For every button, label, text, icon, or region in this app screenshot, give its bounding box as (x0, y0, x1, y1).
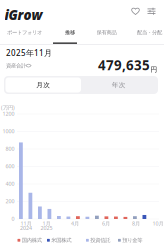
staticText: 6月 (102, 220, 110, 227)
staticText: 預り金等 (122, 237, 142, 244)
staticText: 資産合計 (6, 62, 26, 69)
button[interactable]: 年次 (81, 77, 156, 92)
staticText: 400 (5, 180, 14, 187)
staticText: 600 (5, 163, 14, 170)
staticText: 1月 (42, 220, 50, 227)
staticText: (万円) (1, 104, 15, 111)
staticText: 800 (5, 145, 14, 152)
button[interactable]: Hide balance (25, 63, 31, 68)
staticText: 200 (5, 198, 14, 205)
staticText: 479,635 (98, 56, 150, 74)
staticText: 2025年11月 (6, 47, 52, 58)
staticText: 月次 (36, 81, 50, 89)
button[interactable]: Favorites (131, 6, 140, 15)
staticText: 2025 (40, 224, 52, 232)
staticText: 年次 (112, 81, 126, 89)
staticText: 2024 (20, 224, 32, 232)
staticText: 0 (11, 215, 14, 222)
staticText: 1200 (2, 110, 14, 117)
button[interactable]: 配当・分配 (120, 28, 164, 37)
button[interactable]: ポートフォリオ (0, 28, 45, 37)
button[interactable]: 推移 (45, 28, 81, 37)
staticText: 配当・分配 (137, 29, 162, 36)
staticText: 保有商品 (96, 29, 116, 36)
button[interactable]: Filter (147, 6, 156, 15)
staticText: 円 (150, 65, 157, 74)
staticText: 国内株式 (22, 237, 42, 244)
staticText: 1000 (2, 128, 14, 135)
staticText: iGrow (4, 6, 42, 24)
staticText: 投資信託 (90, 237, 110, 244)
button[interactable]: 月次 (5, 77, 81, 92)
staticText: 11月 (20, 220, 31, 227)
staticText: 米国株式 (51, 237, 71, 244)
staticText: ポートフォリオ (7, 29, 42, 36)
staticText: 4月 (71, 220, 79, 227)
staticText: 8月 (132, 220, 140, 227)
button[interactable]: 保有商品 (81, 28, 120, 37)
staticText: 推移 (65, 29, 75, 36)
staticText: 10月 (152, 220, 163, 227)
